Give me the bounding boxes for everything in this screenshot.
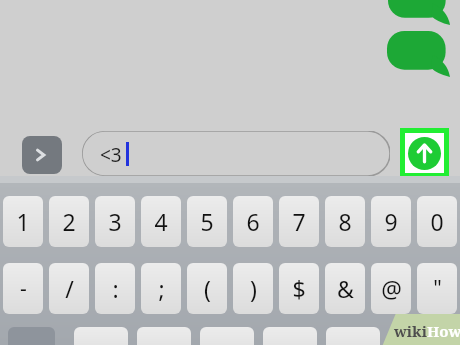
button[interactable]: 4 bbox=[141, 196, 181, 247]
button[interactable]: ) bbox=[233, 263, 273, 314]
staticText: 6 bbox=[246, 206, 260, 237]
staticText: 8 bbox=[338, 206, 352, 237]
button[interactable] bbox=[137, 327, 191, 345]
staticText: How bbox=[427, 321, 460, 341]
button[interactable]: 3 bbox=[95, 196, 135, 247]
button[interactable] bbox=[74, 327, 128, 345]
staticText: : bbox=[112, 273, 119, 304]
button[interactable]: Show more options bbox=[22, 136, 62, 174]
button[interactable]: 6 bbox=[233, 196, 273, 247]
staticText: 5 bbox=[200, 206, 214, 237]
button[interactable]: 0 bbox=[417, 196, 457, 247]
button[interactable]: & bbox=[325, 263, 365, 314]
button[interactable]: ; bbox=[141, 263, 181, 314]
staticText: " bbox=[433, 274, 442, 303]
button[interactable]: " bbox=[417, 263, 457, 314]
button[interactable]: - bbox=[3, 263, 43, 314]
button[interactable]: : bbox=[95, 263, 135, 314]
button[interactable]: 8 bbox=[325, 196, 365, 247]
button[interactable]: 9 bbox=[371, 196, 411, 247]
staticText: ; bbox=[158, 273, 165, 304]
staticText: ) bbox=[250, 273, 257, 304]
staticText: / bbox=[65, 273, 74, 304]
staticText: & bbox=[337, 273, 354, 304]
staticText: 1 bbox=[16, 206, 30, 237]
button[interactable]: Send bbox=[400, 128, 449, 178]
staticText: wiki bbox=[394, 321, 427, 341]
button[interactable]: 2 bbox=[49, 196, 89, 247]
staticText: <3 bbox=[100, 142, 122, 168]
button[interactable]: 1 bbox=[3, 196, 43, 247]
staticText: 7 bbox=[292, 206, 306, 237]
button[interactable]: ( bbox=[187, 263, 227, 314]
button[interactable]: 7 bbox=[279, 196, 319, 247]
staticText: 2 bbox=[62, 206, 76, 237]
staticText: 3 bbox=[108, 206, 122, 237]
button[interactable]: <3 bbox=[82, 131, 390, 176]
button[interactable] bbox=[200, 327, 254, 345]
staticText: 9 bbox=[384, 206, 398, 237]
button[interactable] bbox=[326, 327, 380, 345]
button[interactable]: 5 bbox=[187, 196, 227, 247]
staticText: - bbox=[20, 274, 27, 303]
staticText: 0 bbox=[430, 206, 444, 237]
staticText: @ bbox=[381, 273, 402, 304]
button[interactable]: / bbox=[49, 263, 89, 314]
button[interactable]: $ bbox=[279, 263, 319, 314]
button[interactable]: @ bbox=[371, 263, 411, 314]
staticText: $ bbox=[292, 273, 306, 304]
staticText: ( bbox=[204, 273, 211, 304]
button[interactable] bbox=[263, 327, 317, 345]
staticText: 4 bbox=[154, 206, 168, 237]
